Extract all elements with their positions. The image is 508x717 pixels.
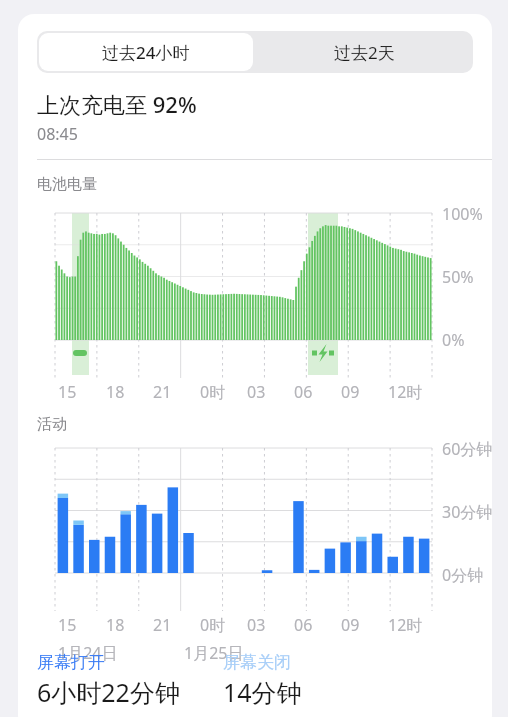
staticText: 0时: [200, 614, 226, 636]
staticText: 12时: [388, 381, 423, 403]
staticText: 6小时22分钟: [37, 675, 180, 709]
button[interactable]: 过去24小时: [39, 33, 253, 71]
staticText: 09: [341, 614, 360, 636]
staticText: 上次充电至 92%: [37, 89, 197, 119]
staticText: 08:45: [37, 123, 78, 145]
staticText: 0分钟: [442, 564, 484, 586]
staticText: 0时: [200, 381, 226, 403]
staticText: 18: [106, 381, 125, 403]
staticText: 屏幕打开: [37, 652, 105, 673]
staticText: 1月25日: [184, 642, 244, 664]
staticText: 50%: [442, 266, 474, 288]
staticText: 1月24日: [58, 642, 118, 664]
staticText: 12时: [388, 614, 423, 636]
staticText: 过去24小时: [102, 41, 190, 64]
staticText: 0%: [442, 329, 465, 351]
staticText: 18: [106, 614, 125, 636]
staticText: 03: [247, 614, 266, 636]
staticText: 过去2天: [334, 41, 395, 64]
staticText: 100%: [442, 203, 483, 225]
button[interactable]: 过去2天: [255, 31, 473, 73]
staticText: 09: [341, 381, 360, 403]
staticText: 21: [153, 614, 172, 636]
staticText: 屏幕关闭: [223, 652, 291, 673]
staticText: 03: [247, 381, 266, 403]
staticText: 15: [58, 614, 77, 636]
staticText: 14分钟: [223, 675, 302, 709]
staticText: 06: [294, 614, 313, 636]
staticText: 电池电量: [37, 175, 97, 194]
staticText: 06: [294, 381, 313, 403]
staticText: 活动: [37, 415, 67, 434]
staticText: 30分钟: [442, 501, 492, 523]
staticText: 21: [153, 381, 172, 403]
staticText: 15: [58, 381, 77, 403]
staticText: 60分钟: [442, 438, 492, 460]
